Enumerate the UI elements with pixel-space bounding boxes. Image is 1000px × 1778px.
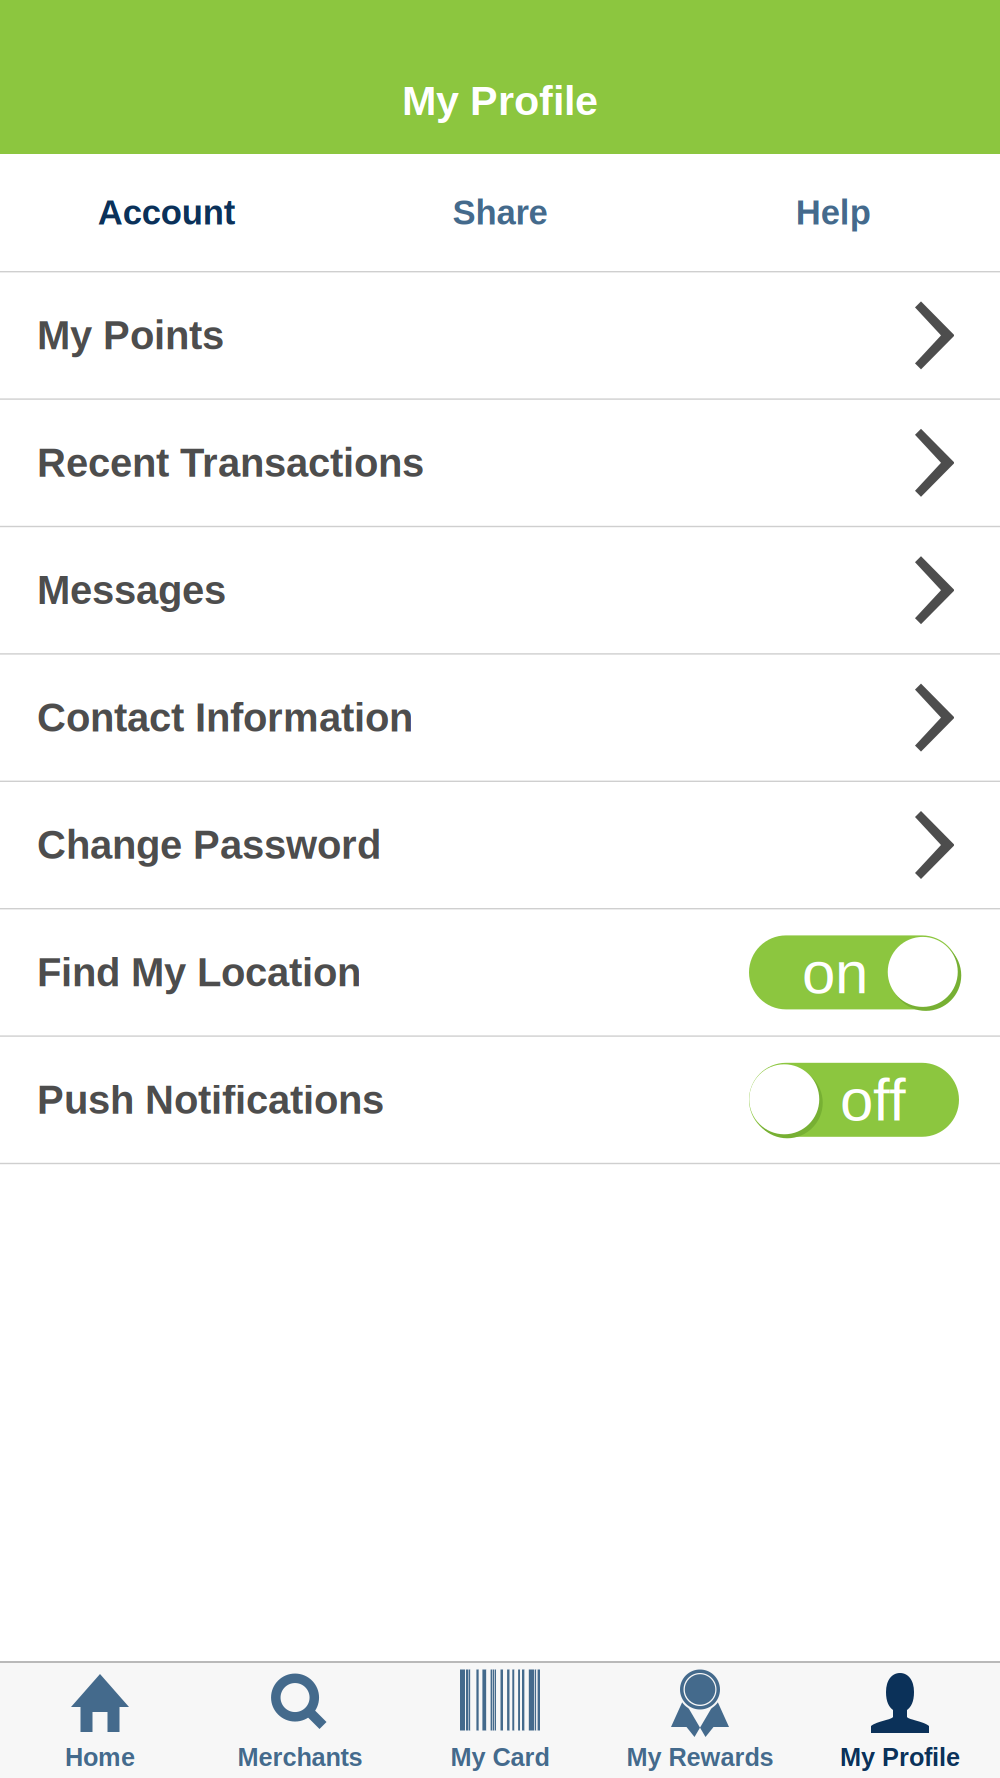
staticText: off bbox=[840, 1066, 906, 1133]
staticText: My Card bbox=[450, 1743, 549, 1771]
button[interactable]: My Card bbox=[400, 1662, 600, 1778]
staticText: My Profile bbox=[402, 77, 598, 124]
staticText: Share bbox=[452, 193, 547, 232]
staticText: My Rewards bbox=[626, 1743, 773, 1771]
staticText: My Profile bbox=[840, 1743, 960, 1771]
button[interactable]: My Points bbox=[0, 272, 1000, 398]
staticText: Help bbox=[796, 193, 871, 232]
button[interactable]: Share bbox=[333, 154, 667, 271]
button[interactable]: Home bbox=[0, 1662, 200, 1778]
staticText: Merchants bbox=[237, 1743, 362, 1771]
button[interactable]: My Rewards bbox=[600, 1662, 800, 1778]
button[interactable]: Messages bbox=[0, 527, 1000, 653]
staticText: My Points bbox=[37, 313, 224, 358]
button[interactable]: Contact Information bbox=[0, 655, 1000, 781]
button[interactable]: Change Password bbox=[0, 782, 1000, 908]
button[interactable]: Help bbox=[667, 154, 1000, 271]
staticText: on bbox=[802, 939, 868, 1006]
staticText: Account bbox=[98, 193, 236, 232]
staticText: Find My Location bbox=[37, 950, 361, 995]
button[interactable]: Account bbox=[0, 154, 333, 271]
button[interactable]: Recent Transactions bbox=[0, 400, 1000, 526]
staticText: Home bbox=[65, 1743, 135, 1771]
button[interactable]: Merchants bbox=[200, 1662, 400, 1778]
staticText: Recent Transactions bbox=[37, 440, 424, 485]
staticText: Change Password bbox=[37, 823, 381, 867]
button[interactable]: Find My Location bbox=[0, 909, 1000, 1035]
staticText: Push Notifications bbox=[37, 1077, 384, 1122]
button[interactable]: Push Notifications bbox=[0, 1037, 1000, 1163]
staticText: Contact Information bbox=[37, 695, 413, 740]
staticText: Messages bbox=[37, 568, 226, 613]
button[interactable]: My Profile bbox=[800, 1662, 1000, 1778]
